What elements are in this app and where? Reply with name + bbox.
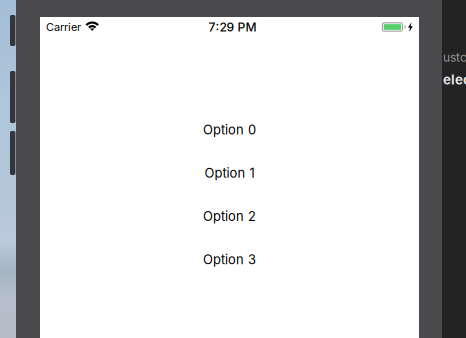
button[interactable]: Option 2 (203, 208, 256, 224)
staticText: Option 3 (203, 252, 256, 267)
button[interactable]: Option 0 (203, 122, 256, 138)
staticText: elec (443, 71, 466, 88)
staticText: Carrier (46, 20, 81, 34)
staticText: 7:29 PM (208, 20, 256, 34)
button[interactable]: Option 1 (204, 165, 254, 181)
staticText: Option 1 (204, 165, 254, 181)
staticText: ustco (443, 50, 466, 64)
button[interactable]: Option 3 (203, 252, 256, 267)
staticText: Option 2 (203, 208, 256, 224)
staticText: Option 0 (203, 122, 256, 138)
